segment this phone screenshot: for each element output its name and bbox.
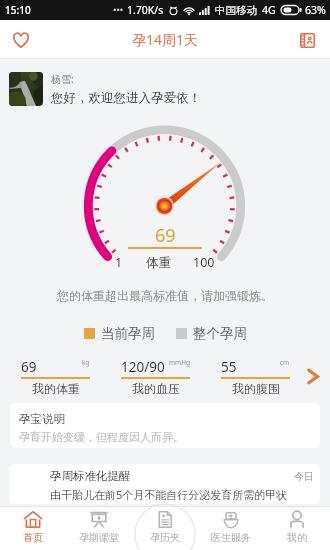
staticText: 100	[193, 254, 215, 271]
staticText: 1.70K/s	[127, 3, 164, 17]
staticText: 孕历夹	[150, 531, 180, 544]
button[interactable]: 我的	[264, 506, 330, 550]
staticText: 1	[115, 254, 123, 271]
staticText: 孕宝说明	[19, 412, 65, 426]
button[interactable]: 孕期课堂	[66, 506, 132, 550]
staticText: 15:10	[5, 3, 31, 17]
staticText: 由干胎儿在前5个月不能自行分泌发育所需的甲状	[50, 487, 288, 502]
staticText: 首页	[23, 531, 43, 544]
button[interactable]: 69	[0, 356, 100, 396]
staticText: 我的	[287, 531, 307, 544]
button[interactable]: 杨雪:	[9, 63, 320, 115]
staticText: 您的体重超出最高标准值，请加强锻炼。	[57, 288, 273, 303]
staticText: 4G	[262, 3, 276, 17]
staticText: 中国移动	[215, 4, 257, 17]
staticText: mmHg	[169, 358, 190, 367]
button[interactable]: 首页	[0, 506, 66, 550]
button[interactable]: 孕宝说明	[10, 403, 320, 448]
staticText: 孕周标准化提醒	[50, 469, 131, 483]
button[interactable]: 医生服务	[198, 506, 264, 550]
staticText: 杨雪:	[51, 72, 74, 86]
staticText: 63%	[305, 3, 326, 17]
staticText: 您好，欢迎您进入孕爱依！	[51, 90, 201, 106]
button[interactable]: 孕周标准化提醒	[9, 464, 320, 504]
staticText: cm	[280, 358, 290, 367]
button[interactable]: 孕历夹	[132, 506, 198, 550]
staticText: 69	[155, 223, 176, 248]
staticText: 120/90	[121, 358, 165, 376]
button[interactable]: Contacts	[292, 25, 322, 55]
staticText: 孕14周1天	[132, 30, 199, 49]
button[interactable]: 55	[200, 356, 300, 396]
staticText: 69	[21, 358, 37, 376]
staticText: 孕期课堂	[79, 531, 119, 544]
button[interactable]: More	[300, 356, 325, 396]
staticText: 我的腹围	[232, 381, 280, 396]
staticText: 整个孕周	[193, 325, 247, 342]
staticText: 55	[221, 358, 237, 376]
staticText: kg	[82, 358, 90, 367]
staticText: 当前孕周	[101, 325, 155, 342]
staticText: •••	[113, 3, 124, 15]
staticText: 体重	[146, 255, 171, 271]
staticText: 今日	[294, 470, 314, 483]
staticText: 我的血压	[132, 381, 180, 396]
staticText: 孕育开始变缓，但程度因人而异。	[19, 430, 184, 444]
button[interactable]: Favorite	[6, 25, 36, 55]
staticText: 我的体重	[32, 381, 80, 396]
staticText: 医生服务	[211, 531, 251, 544]
button[interactable]: 120/90	[100, 356, 200, 396]
